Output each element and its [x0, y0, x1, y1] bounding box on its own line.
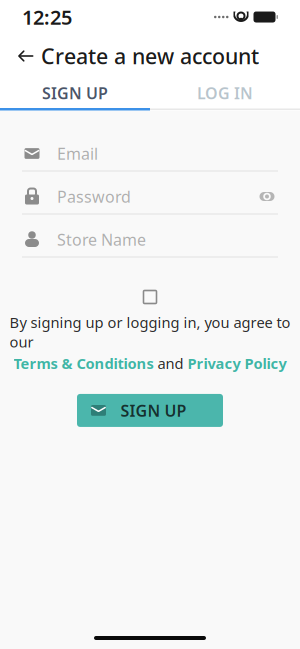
staticText: SIGN UP: [42, 82, 108, 104]
staticText: Email: [57, 143, 98, 164]
staticText: LOG IN: [197, 82, 253, 104]
staticText: Password: [57, 186, 131, 207]
button[interactable]: SIGN UP: [77, 394, 223, 427]
staticText: Store Name: [57, 229, 146, 250]
button[interactable]: SIGN UP: [0, 78, 150, 108]
staticText: By signing up or logging in, you agree t…: [9, 312, 290, 351]
staticText: 12:25: [22, 4, 72, 30]
staticText: Privacy Policy: [187, 353, 286, 373]
button[interactable]: Agree to terms: [135, 282, 164, 311]
staticText: SIGN UP: [120, 400, 186, 421]
button[interactable]: LOG IN: [150, 78, 300, 108]
button[interactable]: Back: [6, 36, 46, 76]
staticText: Create a new account: [41, 42, 259, 70]
button[interactable]: Show password: [256, 185, 278, 207]
button[interactable]: Terms & Conditions: [13, 353, 153, 373]
button[interactable]: Privacy Policy: [187, 353, 286, 373]
staticText: and: [157, 353, 183, 373]
staticText: Terms & Conditions: [13, 353, 153, 373]
